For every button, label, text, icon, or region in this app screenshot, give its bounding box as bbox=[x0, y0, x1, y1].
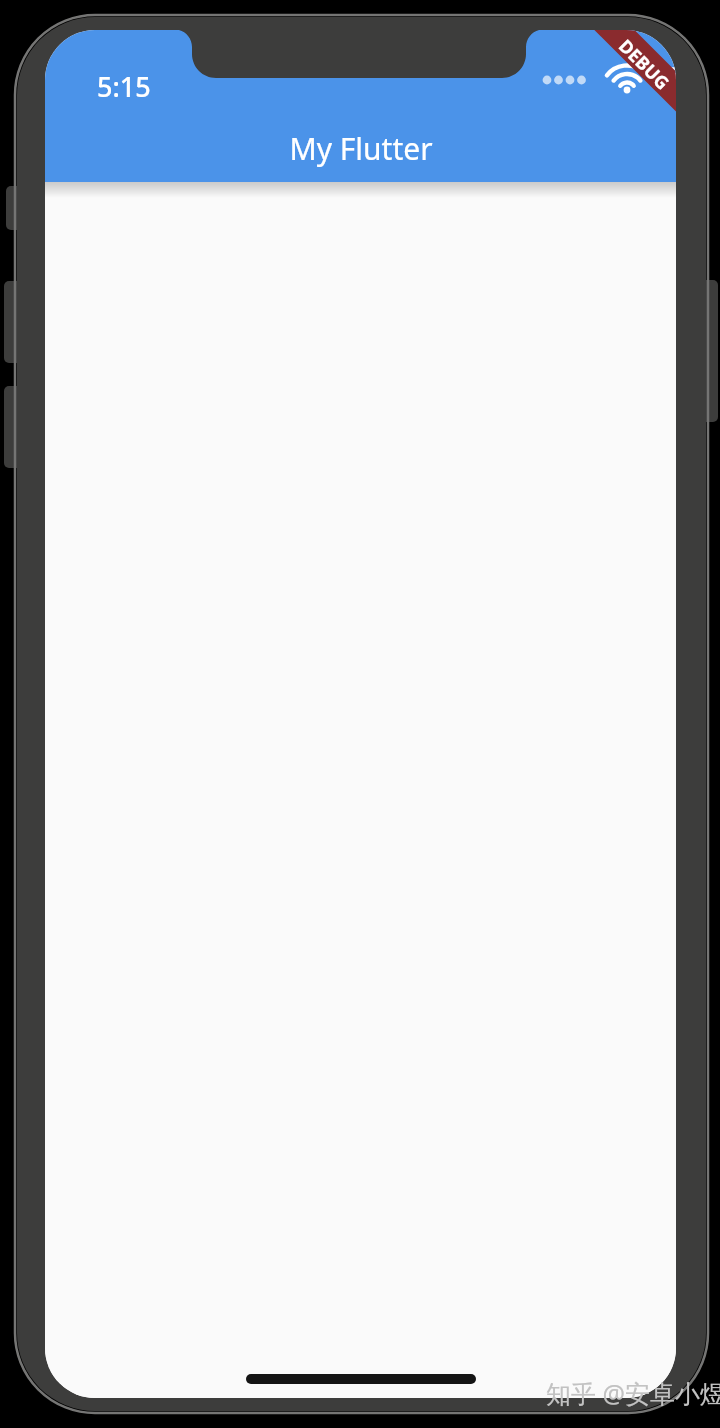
staticText: DEBUG bbox=[613, 34, 675, 95]
staticText: 5:15 bbox=[97, 68, 151, 105]
button[interactable] bbox=[45, 198, 676, 1398]
staticText: My Flutter bbox=[289, 128, 433, 169]
staticText: 知乎 @安卓小煜 bbox=[546, 1376, 720, 1410]
button[interactable]: Home indicator bbox=[246, 1374, 476, 1384]
